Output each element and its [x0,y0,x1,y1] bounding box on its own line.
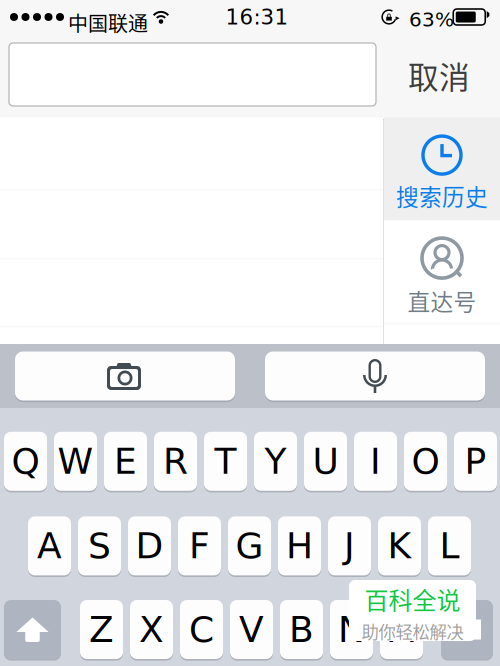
staticText: V [239,608,264,650]
staticText: 63% [409,8,454,31]
staticText: T [214,440,236,482]
button[interactable]: W [54,431,97,492]
button[interactable]: Shift [4,599,61,660]
button[interactable]: A [28,516,71,576]
button[interactable]: V [230,599,273,660]
button[interactable]: H [278,516,321,576]
button[interactable]: X [130,599,173,660]
staticText: Q [11,440,39,482]
staticText: 16:31 [225,5,288,29]
staticText: P [464,440,486,482]
staticText: X [139,608,164,650]
button[interactable]: N [330,599,373,660]
button[interactable]: Q [4,431,47,492]
staticText: 中国联通 [68,8,148,37]
button[interactable]: Y [254,431,297,492]
staticText: 搜索历史 [396,179,488,212]
button[interactable]: M [380,599,423,660]
staticText: Z [89,608,114,650]
staticText: I [370,440,381,482]
button[interactable]: I [354,431,397,492]
button[interactable]: Camera [15,351,235,401]
button[interactable]: R [154,431,197,492]
button[interactable]: U [304,431,347,492]
button[interactable]: K [378,516,421,576]
button[interactable]: D [128,516,171,576]
staticText: L [439,525,459,567]
button[interactable]: Z [80,599,123,660]
staticText: K [387,525,411,567]
button[interactable]: F [178,516,221,576]
staticText: J [344,525,355,567]
staticText: O [411,440,439,482]
staticText: N [338,608,365,650]
staticText: M [386,608,417,650]
staticText: 百科全说 [364,582,460,616]
button[interactable]: L [428,516,471,576]
staticText: Y [264,440,286,482]
staticText: 取消 [408,53,470,98]
button[interactable]: Voice input [265,351,485,401]
staticText: E [114,440,137,482]
button[interactable]: S [78,516,121,576]
button[interactable]: G [228,516,271,576]
button[interactable]: 取消 [382,35,496,116]
button[interactable]: C [180,599,223,660]
button[interactable]: P [454,431,497,492]
staticText: B [289,608,314,650]
button[interactable]: T [204,431,247,492]
button[interactable]: E [104,431,147,492]
staticText: U [312,440,338,482]
button[interactable]: Delete [441,599,493,660]
staticText: W [57,440,93,482]
button[interactable]: J [328,516,371,576]
button[interactable]: 搜索历史 [384,117,500,220]
staticText: R [163,440,188,482]
staticText: 直达号 [407,284,476,317]
staticText: D [135,525,163,567]
staticText: C [189,608,214,650]
staticText: A [37,525,62,567]
button[interactable]: 直达号 [384,220,500,323]
staticText: G [235,525,263,567]
staticText: H [286,525,313,567]
button[interactable]: B [280,599,323,660]
staticText: 助你轻松解决 [361,618,463,643]
button[interactable]: O [404,431,447,492]
staticText: F [189,525,210,567]
staticText: S [88,525,111,567]
